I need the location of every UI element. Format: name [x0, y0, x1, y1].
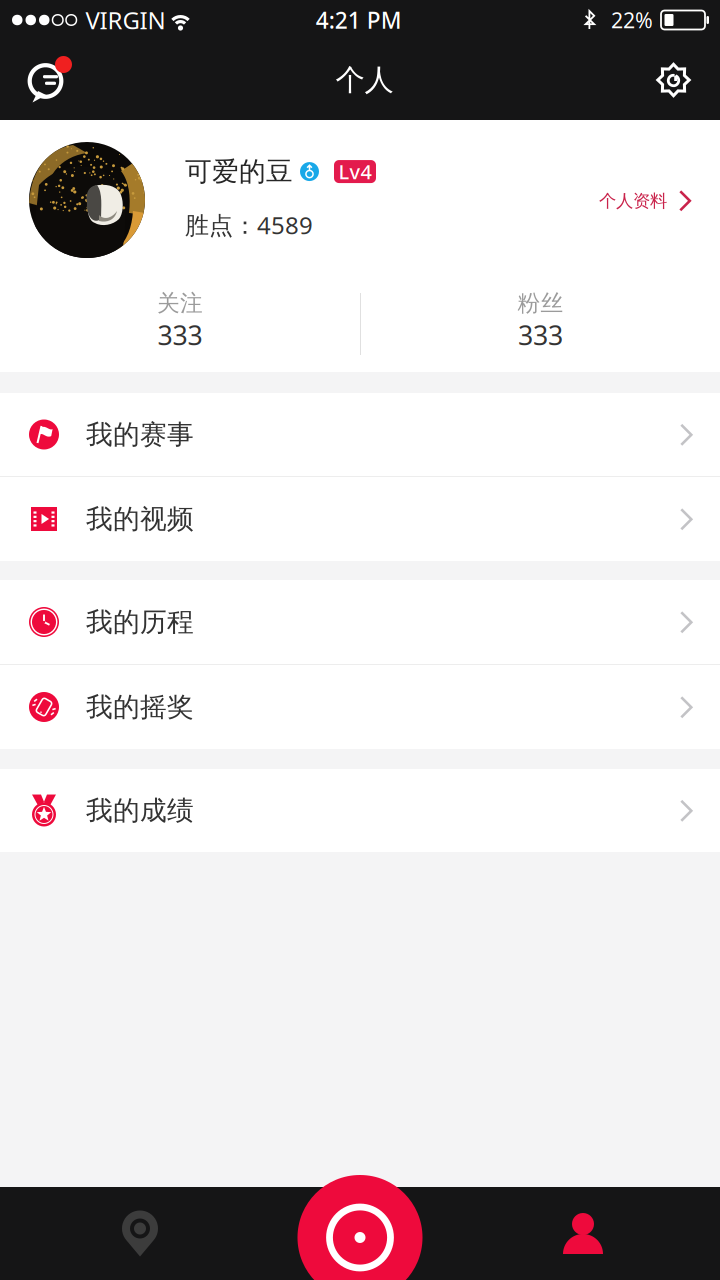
- button[interactable]: 我的摇奖: [0, 665, 720, 749]
- staticText: 4:21 PM: [316, 5, 402, 35]
- button[interactable]: 我的视频: [0, 477, 720, 561]
- button[interactable]: 关注: [0, 276, 360, 372]
- button[interactable]: Profile: [480, 1187, 720, 1280]
- staticText: 我的摇奖: [86, 691, 194, 723]
- staticText: 我的视频: [86, 503, 194, 535]
- staticText: 我的成绩: [86, 794, 194, 827]
- button[interactable]: Record: [297, 1175, 422, 1280]
- button[interactable]: 个人资料: [599, 143, 720, 253]
- staticText: 333: [157, 317, 202, 353]
- staticText: 我的赛事: [86, 418, 194, 451]
- button[interactable]: Settings: [638, 40, 720, 120]
- staticText: Lv4: [338, 158, 371, 185]
- button[interactable]: Nearby: [0, 1187, 240, 1280]
- staticText: 可爱的豆: [185, 155, 293, 188]
- staticText: VIRGIN: [85, 4, 165, 36]
- button[interactable]: 粉丝: [361, 276, 720, 372]
- staticText: 胜点：4589: [185, 209, 313, 241]
- button[interactable]: Record: [240, 1187, 480, 1280]
- button[interactable]: 我的成绩: [0, 769, 720, 852]
- button[interactable]: 我的历程: [0, 580, 720, 664]
- button[interactable]: Messages: [0, 40, 91, 120]
- staticText: 粉丝: [517, 289, 563, 317]
- staticText: 关注: [157, 289, 203, 317]
- button[interactable]: 我的赛事: [0, 393, 720, 476]
- staticText: 个人: [335, 62, 393, 98]
- staticText: 22%: [611, 6, 653, 34]
- staticText: 我的历程: [86, 606, 194, 638]
- staticText: 333: [518, 317, 563, 353]
- staticText: 个人资料: [599, 190, 667, 212]
